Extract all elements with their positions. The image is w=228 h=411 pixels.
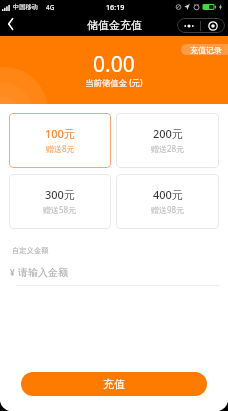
button[interactable]: 100元 bbox=[9, 113, 111, 168]
button[interactable]: 充值 bbox=[21, 372, 207, 396]
staticText: 自定义金额 bbox=[12, 246, 49, 255]
button[interactable]: 充值记录 bbox=[181, 44, 228, 55]
button[interactable]: More options bbox=[177, 18, 200, 33]
staticText: 赠送58元 bbox=[43, 204, 77, 215]
staticText: 100元 bbox=[45, 126, 75, 141]
button[interactable]: Close mini program bbox=[201, 18, 225, 33]
staticText: 当前储值金 (元) bbox=[85, 77, 143, 88]
staticText: 充值 bbox=[103, 377, 125, 391]
staticText: 赠送8元 bbox=[46, 143, 75, 154]
button[interactable]: 300元 bbox=[9, 174, 111, 229]
staticText: 300元 bbox=[45, 187, 75, 202]
staticText: 储值金充值 bbox=[87, 18, 142, 32]
staticText: 中国移动 bbox=[13, 3, 38, 11]
staticText: 充值记录 bbox=[190, 45, 222, 55]
staticText: 赠送98元 bbox=[151, 204, 185, 215]
staticText: 赠送28元 bbox=[151, 143, 185, 154]
staticText: 400元 bbox=[153, 187, 183, 202]
staticText: 0.00 bbox=[93, 50, 135, 79]
staticText: ¥ bbox=[10, 267, 15, 278]
staticText: 200元 bbox=[153, 126, 183, 141]
staticText: 4G bbox=[46, 3, 55, 12]
button[interactable]: 400元 bbox=[116, 174, 219, 229]
button[interactable]: Back bbox=[1, 15, 19, 33]
button[interactable]: 200元 bbox=[116, 113, 219, 168]
staticText: 请输入金额 bbox=[18, 266, 68, 279]
staticText: 16:19 bbox=[106, 2, 125, 12]
